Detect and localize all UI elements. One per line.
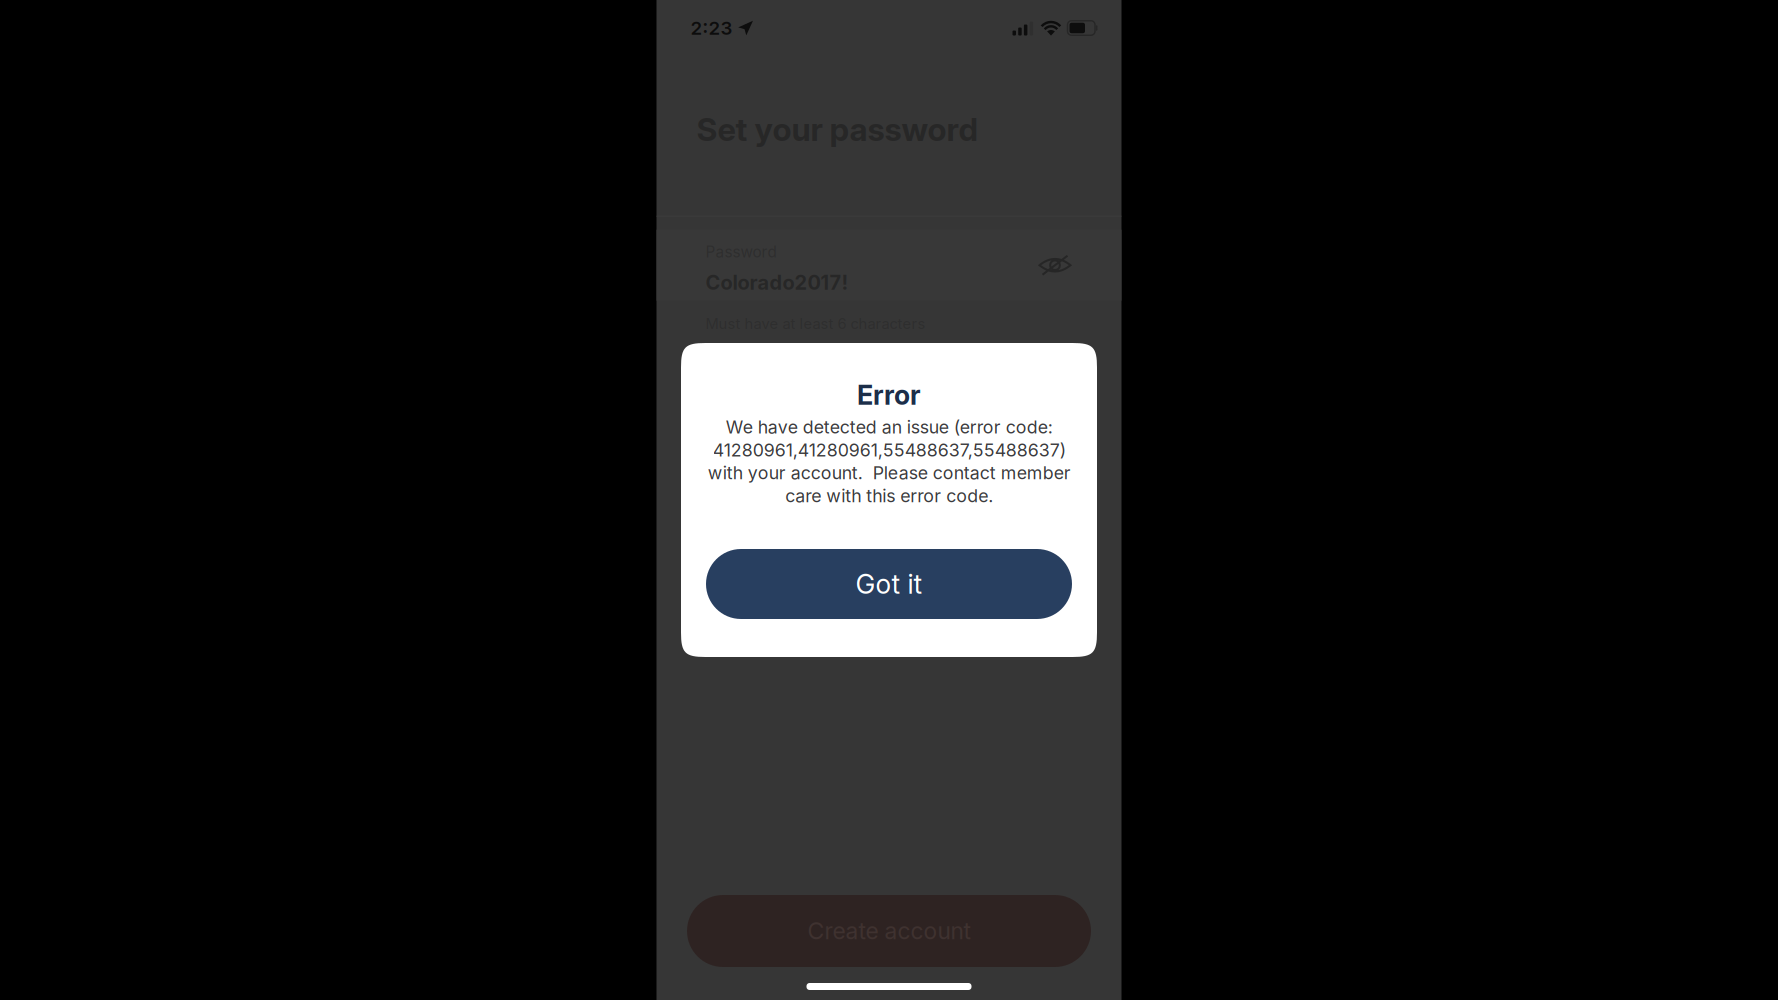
staticText: Set your password <box>696 110 978 149</box>
staticText: We have detected an issue (error code: 4… <box>707 416 1070 507</box>
button[interactable]: Got it <box>706 549 1072 619</box>
staticText: Password <box>705 243 776 261</box>
staticText: Got it <box>855 568 922 600</box>
button[interactable]: Create account <box>687 895 1091 967</box>
button[interactable]: Show password <box>1039 243 1071 277</box>
staticText: 2:23 <box>690 17 732 39</box>
staticText: Create account <box>807 917 970 945</box>
staticText: Error <box>857 379 921 411</box>
staticText: Colorado2017! <box>705 270 848 294</box>
